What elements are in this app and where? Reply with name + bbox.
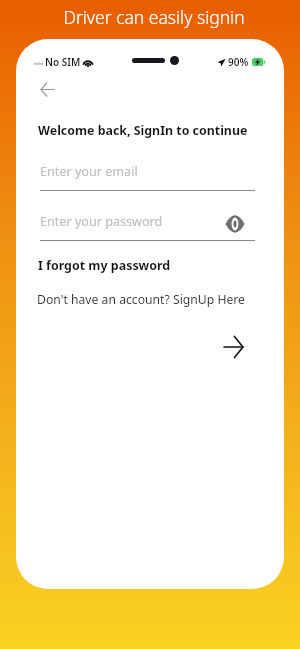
button[interactable]: Enter your email bbox=[40, 157, 255, 191]
staticText: No SIM bbox=[45, 55, 81, 69]
staticText: 90% bbox=[228, 55, 249, 69]
button[interactable]: Toggle password visibility bbox=[223, 212, 247, 236]
staticText: Enter your email bbox=[40, 163, 138, 180]
staticText: Driver can easily signin bbox=[4, 5, 300, 29]
staticText: Welcome back, SignIn to continue bbox=[38, 122, 248, 139]
button[interactable]: I forgot my password bbox=[38, 257, 171, 274]
button[interactable]: Back bbox=[32, 74, 62, 104]
button[interactable]: Don't have an account? SignUp Here bbox=[37, 291, 245, 308]
staticText: Enter your password bbox=[40, 213, 163, 230]
button[interactable]: Enter your password bbox=[40, 207, 255, 241]
button[interactable]: Submit bbox=[213, 327, 253, 367]
